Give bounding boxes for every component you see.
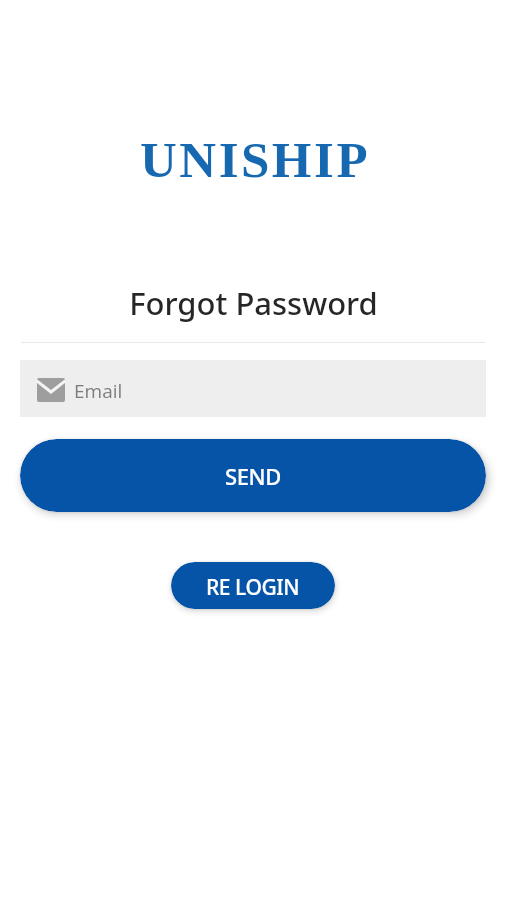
staticText: Email — [74, 378, 123, 404]
staticText: SEND — [225, 461, 281, 491]
staticText: RE LOGIN — [206, 573, 300, 602]
button[interactable]: SEND — [20, 439, 486, 512]
staticText: UNISHIP — [140, 132, 371, 188]
button[interactable]: Email — [20, 360, 486, 417]
button[interactable]: RE LOGIN — [171, 562, 335, 609]
staticText: Forgot Password — [129, 282, 378, 324]
other: Email — [37, 378, 65, 402]
